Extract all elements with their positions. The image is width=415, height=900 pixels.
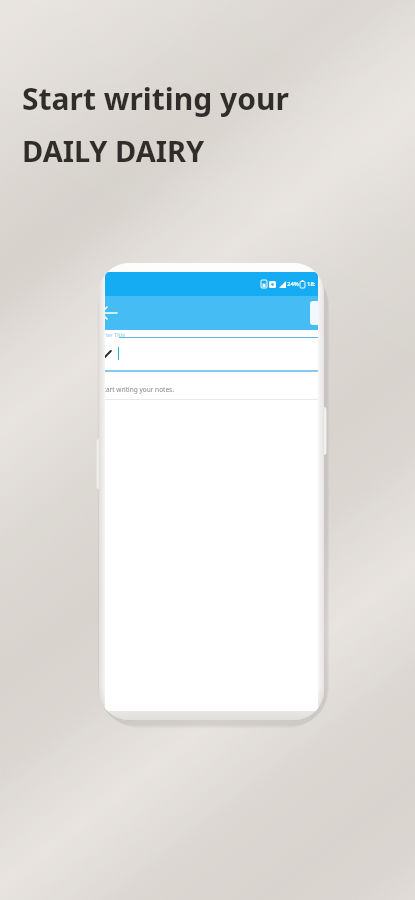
staticText: Start writing your notes. — [105, 385, 174, 394]
button[interactable]: Save note — [310, 301, 318, 325]
button[interactable]: Start writing your notes. — [105, 379, 318, 399]
button[interactable]: Back — [105, 302, 119, 324]
staticText: Enter Title — [105, 331, 126, 338]
staticText: 24% — [287, 280, 299, 288]
staticText: 18: — [307, 280, 316, 288]
button[interactable]: Enter Title — [105, 330, 318, 370]
staticText: Start writing your — [22, 78, 289, 119]
staticText: DAILY DAIRY — [22, 131, 205, 170]
